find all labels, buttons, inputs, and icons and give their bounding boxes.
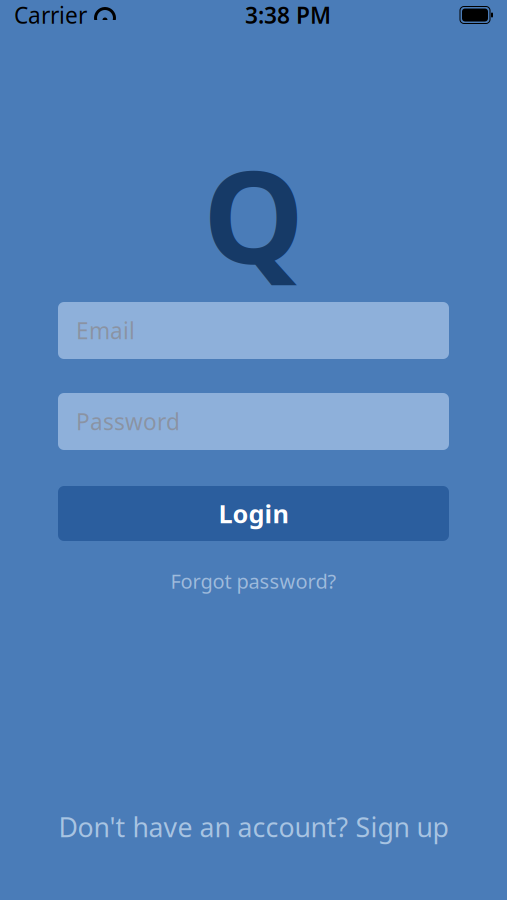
- staticText: Q: [203, 129, 304, 299]
- staticText: Email: [76, 315, 135, 345]
- button[interactable]: Forgot password?: [58, 567, 449, 595]
- staticText: Don't have an account? Sign up: [58, 809, 448, 845]
- button[interactable]: Don't have an account? Sign up: [30, 810, 477, 844]
- staticText: Carrier: [14, 0, 87, 30]
- staticText: Password: [76, 406, 180, 436]
- staticText: 3:38 PM: [245, 0, 331, 30]
- staticText: Login: [218, 497, 288, 530]
- button[interactable]: Login: [58, 486, 449, 541]
- staticText: Forgot password?: [170, 568, 336, 594]
